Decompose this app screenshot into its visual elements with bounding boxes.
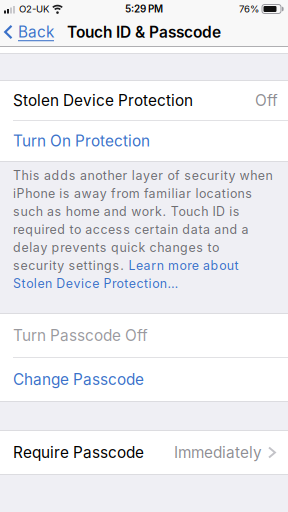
- staticText: 5:29 PM: [125, 3, 163, 15]
- staticText: This adds another layer of security when: [13, 168, 272, 183]
- staticText: delay prevents quick changes to: [13, 240, 219, 255]
- staticText: security settings. Learn more about: [13, 258, 238, 273]
- staticText: 76%: [239, 3, 259, 15]
- staticText: Change Passcode: [13, 370, 144, 389]
- staticText: Immediately: [174, 443, 262, 462]
- staticText: Stolen Device Protection: [13, 91, 193, 110]
- staticText: Back: [18, 23, 54, 41]
- button[interactable]: Turn On Protection: [0, 121, 288, 161]
- button[interactable]: Require Passcode: [0, 431, 288, 474]
- staticText: such as home and work. Touch ID is: [13, 204, 240, 219]
- staticText: iPhone is away from familiar locations: [13, 186, 252, 201]
- staticText: Off: [255, 91, 278, 110]
- staticText: Turn Passcode Off: [13, 326, 148, 345]
- staticText: required to access certain data and a: [13, 222, 249, 237]
- staticText: Stolen Device Protection…: [13, 276, 178, 291]
- staticText: Turn On Protection: [13, 132, 150, 150]
- staticText: Touch ID & Passcode: [67, 23, 221, 41]
- button[interactable]: Change Passcode: [0, 358, 288, 401]
- button[interactable]: Back: [0, 23, 54, 41]
- button[interactable]: Turn Passcode Off: [0, 314, 288, 357]
- staticText: Require Passcode: [13, 443, 144, 462]
- staticText: O2-UK: [19, 3, 49, 15]
- button[interactable]: Learn more about Stolen Device Protectio…: [13, 276, 178, 291]
- button[interactable]: Stolen Device Protection: [0, 81, 288, 120]
